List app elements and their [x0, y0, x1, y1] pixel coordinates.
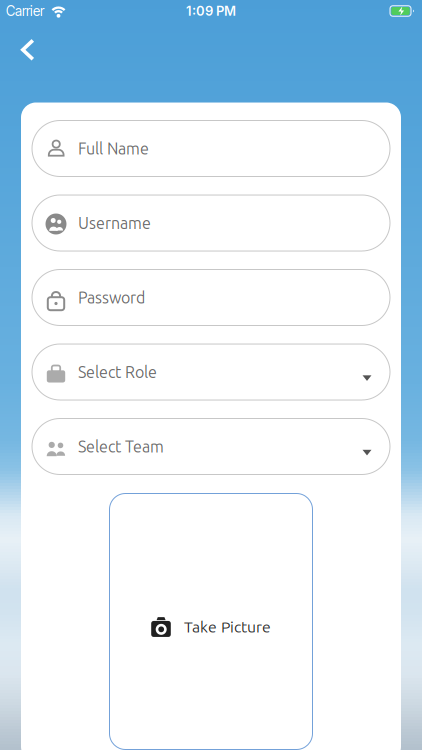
button[interactable]: Back — [0, 30, 34, 70]
staticText: Carrier — [6, 3, 44, 19]
staticText: Full Name — [78, 139, 149, 157]
staticText: Username — [78, 214, 151, 232]
button[interactable]: Password — [32, 269, 390, 325]
button[interactable]: Take Picture — [109, 493, 312, 749]
button[interactable]: Select Team — [32, 418, 390, 474]
staticText: Select Team — [78, 437, 164, 455]
staticText: 1:09 PM — [186, 3, 236, 19]
button[interactable]: Full Name — [32, 120, 390, 176]
staticText: Take Picture — [184, 618, 271, 635]
staticText: Password — [78, 288, 145, 306]
staticText: Select Role — [78, 363, 157, 381]
button[interactable]: Select Role — [32, 344, 390, 400]
button[interactable]: Username — [32, 195, 390, 251]
